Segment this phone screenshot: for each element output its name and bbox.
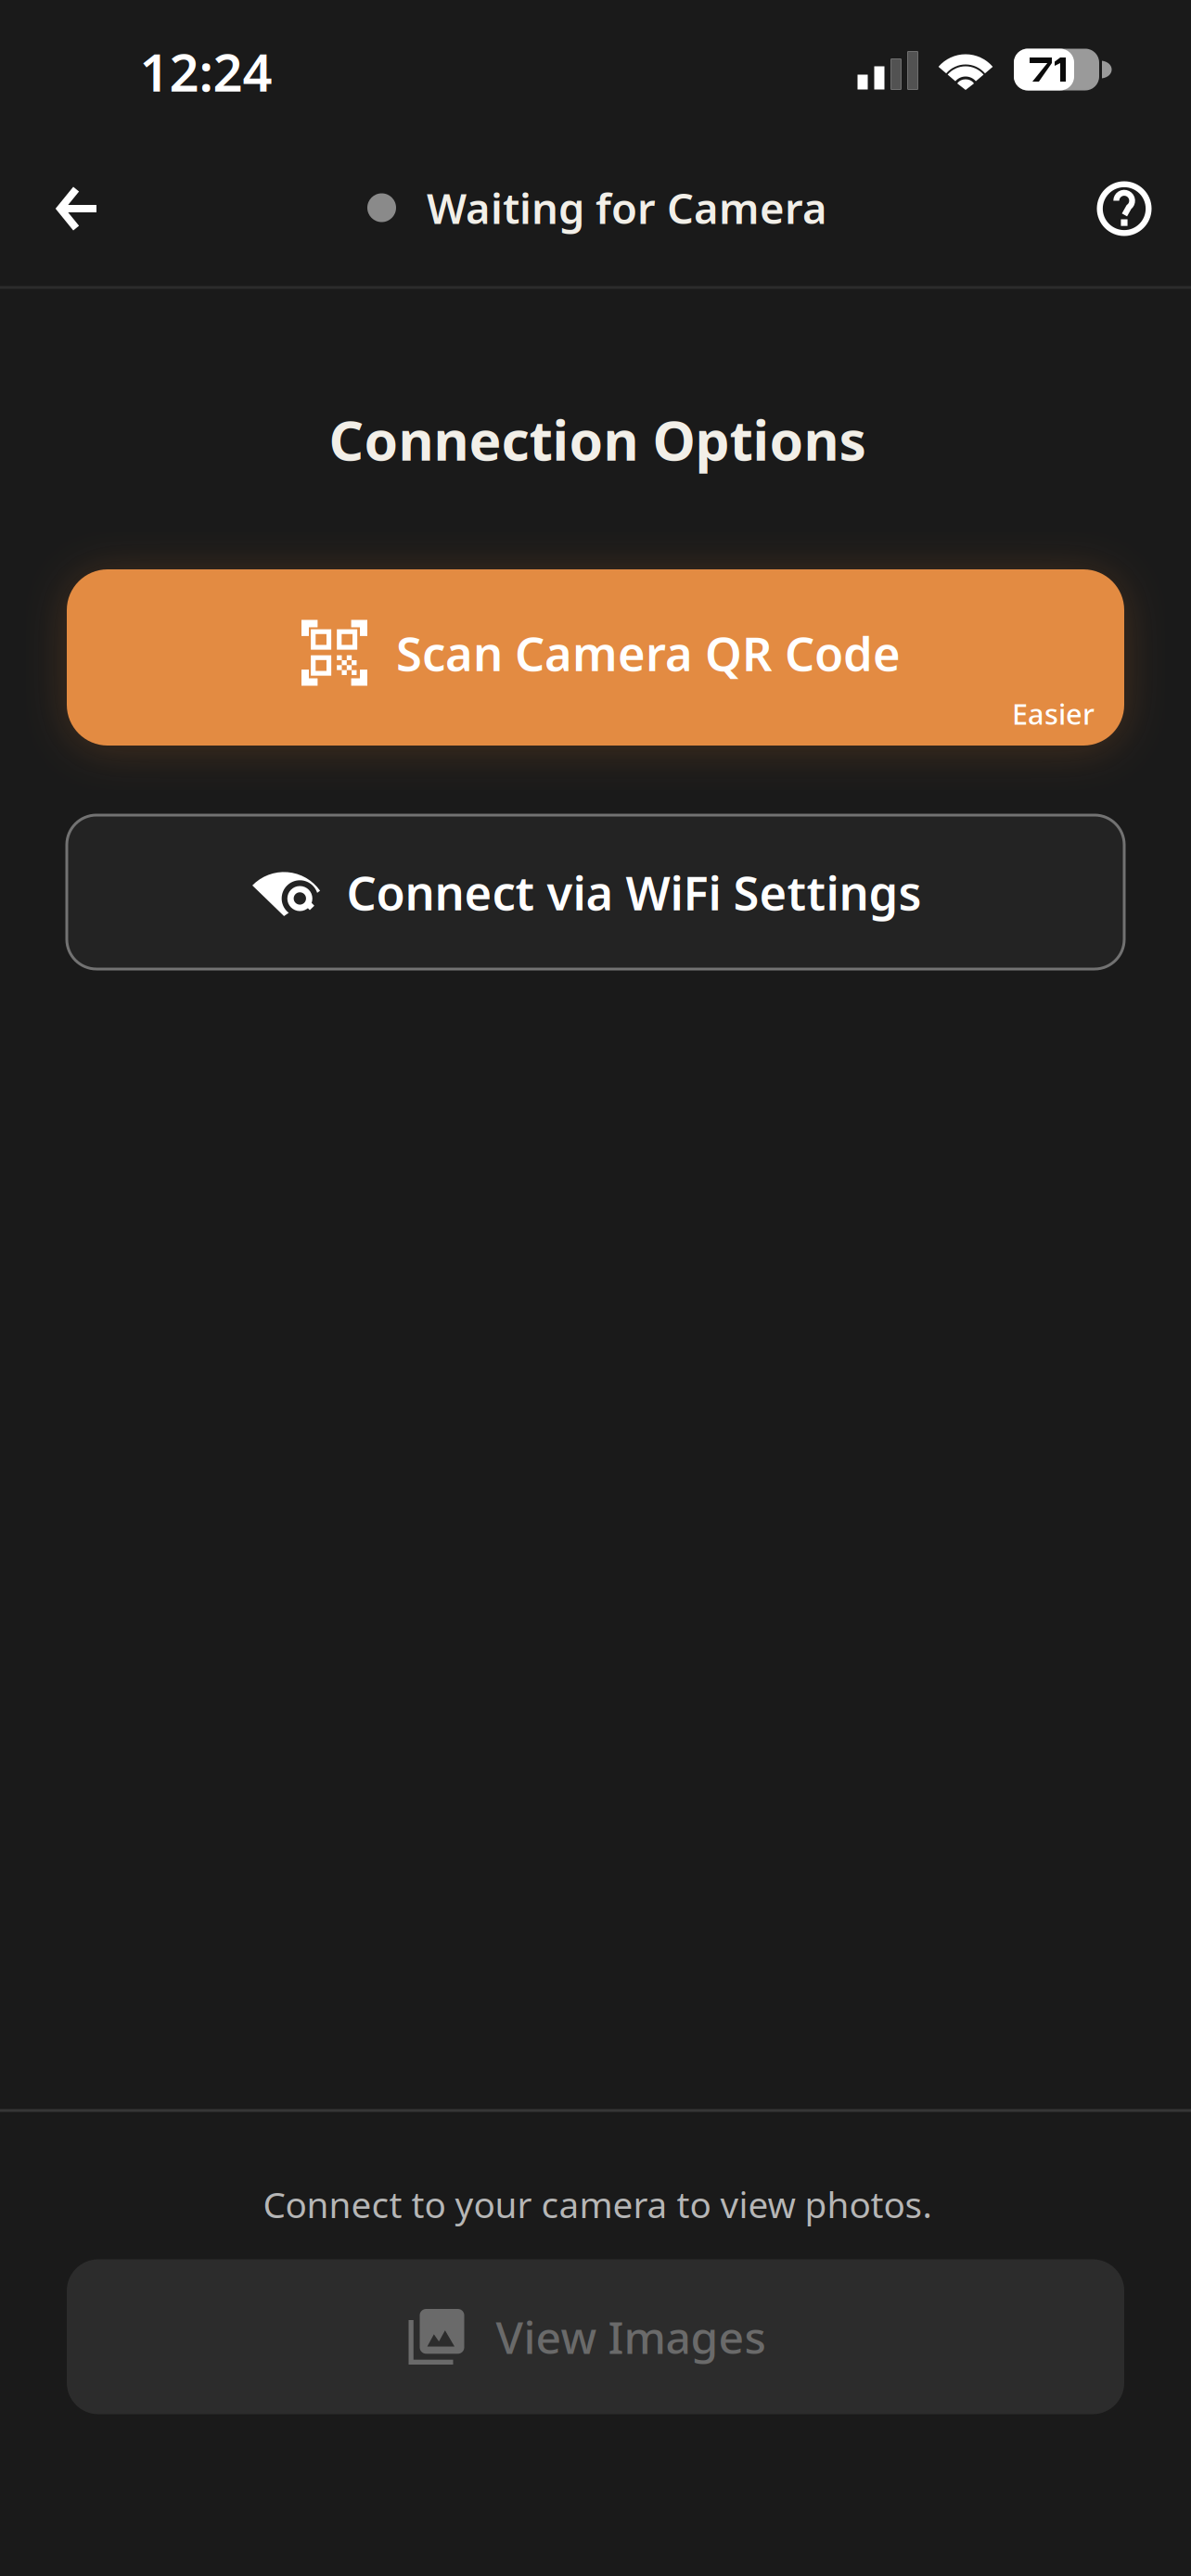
staticText: Scan Camera QR Code [396,622,901,684]
button[interactable]: Scan Camera QR Code [67,569,1124,746]
staticText: Easier [1012,695,1095,733]
button[interactable]: Back [30,160,126,257]
button[interactable]: Help [1076,160,1172,257]
staticText: 12:24 [140,37,272,106]
staticText: Connect to your camera to view photos. [263,2180,932,2228]
button[interactable]: View Images [67,2259,1124,2414]
button[interactable]: Connect via WiFi Settings [67,815,1124,969]
staticText: Connection Options [329,403,866,476]
staticText: Waiting for Camera [427,180,827,236]
staticText: Connect via WiFi Settings [346,861,922,923]
staticText: View Images [496,2307,766,2366]
